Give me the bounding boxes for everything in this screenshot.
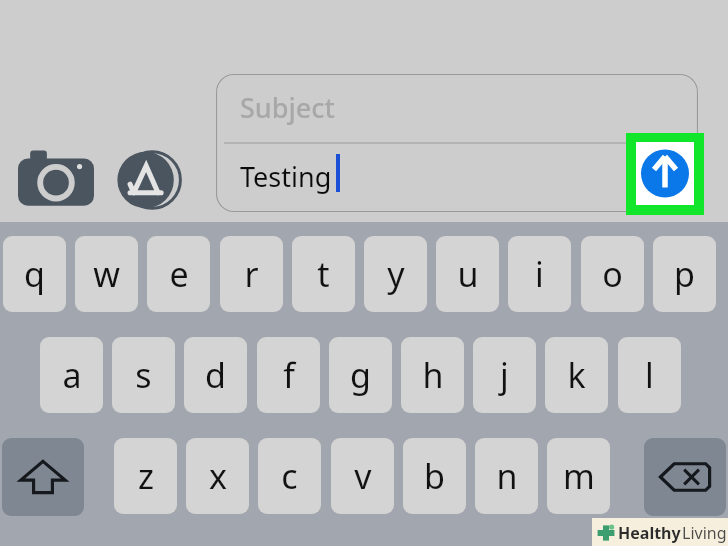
button[interactable]: q (3, 236, 66, 312)
button[interactable]: h (401, 337, 464, 413)
staticText: a (62, 352, 82, 398)
staticText: q (24, 251, 45, 297)
button[interactable]: v (331, 438, 394, 514)
button[interactable]: App Store (118, 150, 188, 210)
button[interactable]: r (220, 236, 283, 312)
staticText: y (387, 251, 405, 297)
staticText: r (244, 251, 259, 297)
button[interactable]: n (475, 438, 538, 514)
staticText: w (93, 251, 120, 297)
staticText: j (500, 352, 509, 398)
staticText: v (354, 453, 372, 499)
staticText: x (209, 453, 227, 499)
button[interactable]: x (186, 438, 249, 514)
staticText: u (457, 251, 479, 297)
staticText: k (567, 352, 586, 398)
staticText: n (496, 453, 518, 499)
staticText: b (424, 453, 445, 499)
button[interactable]: c (258, 438, 321, 514)
button[interactable]: Send (636, 142, 694, 205)
staticText: g (350, 352, 371, 398)
button[interactable]: e (147, 236, 210, 312)
button[interactable]: m (547, 438, 610, 514)
staticText: d (205, 352, 226, 398)
button[interactable]: p (653, 236, 716, 312)
button[interactable]: j (473, 337, 536, 413)
staticText: t (317, 251, 330, 297)
staticText: Testing (240, 158, 332, 195)
button[interactable]: l (618, 337, 681, 413)
button[interactable]: o (581, 236, 644, 312)
staticText: h (422, 352, 444, 398)
staticText: z (138, 453, 154, 499)
staticText: o (602, 251, 623, 297)
button[interactable]: Shift (2, 438, 84, 516)
staticText: m (563, 453, 595, 499)
staticText: e (169, 251, 189, 297)
button[interactable]: a (40, 337, 103, 413)
button[interactable]: Backspace (644, 438, 726, 516)
staticText: i (535, 251, 544, 297)
button[interactable]: u (436, 236, 499, 312)
button[interactable]: w (75, 236, 138, 312)
staticText: Living (682, 522, 727, 544)
staticText: c (281, 453, 298, 499)
button[interactable]: d (184, 337, 247, 413)
staticText: Subject (240, 89, 335, 126)
button[interactable]: f (257, 337, 320, 413)
button[interactable]: y (364, 236, 427, 312)
button[interactable]: g (329, 337, 392, 413)
button[interactable]: b (403, 438, 466, 514)
button[interactable]: t (292, 236, 355, 312)
button[interactable]: i (508, 236, 571, 312)
button[interactable]: Camera (18, 148, 94, 210)
button[interactable]: z (114, 438, 177, 514)
staticText: s (135, 352, 152, 398)
button[interactable]: Subject (216, 74, 698, 212)
staticText: l (645, 352, 654, 398)
button[interactable]: k (545, 337, 608, 413)
staticText: f (283, 352, 295, 398)
staticText: Healthy (618, 522, 681, 544)
staticText: p (674, 251, 695, 297)
button[interactable]: s (112, 337, 175, 413)
